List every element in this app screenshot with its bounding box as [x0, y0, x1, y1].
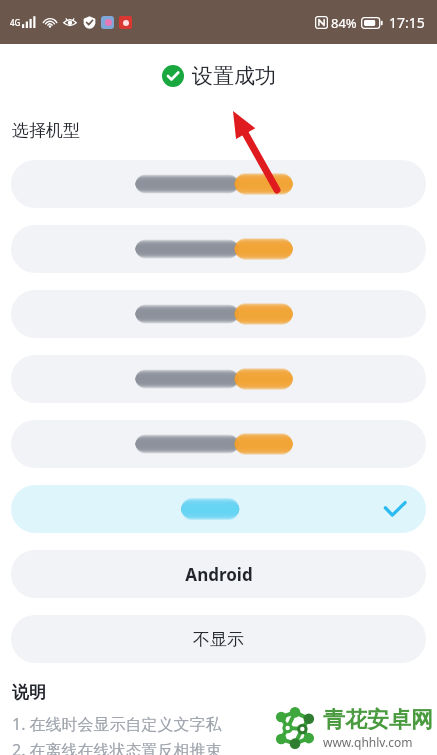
button[interactable]: Selected	[11, 485, 426, 533]
staticText: 说明	[12, 682, 46, 703]
staticText: Android	[185, 563, 253, 586]
staticText: www.qhhlv.com	[323, 734, 413, 750]
button[interactable]	[11, 160, 426, 208]
staticText: 选择机型	[12, 120, 80, 141]
staticText: 青花安卓网	[323, 706, 433, 734]
other: Selected	[384, 501, 406, 517]
staticText: 4G	[10, 17, 21, 28]
staticText: 1. 在线时会显示自定义文字私	[12, 713, 222, 735]
staticText: 17:15	[389, 13, 425, 32]
button[interactable]: Android	[11, 550, 426, 598]
button[interactable]	[11, 225, 426, 273]
staticText: 不显示	[193, 629, 244, 650]
button[interactable]	[11, 290, 426, 338]
staticText: 2. 在离线在线状态置反相推束	[12, 739, 222, 755]
staticText: 设置成功	[192, 63, 276, 89]
button[interactable]	[11, 420, 426, 468]
staticText: 84%	[331, 14, 357, 32]
button[interactable]: 不显示	[11, 615, 426, 663]
button[interactable]	[11, 355, 426, 403]
